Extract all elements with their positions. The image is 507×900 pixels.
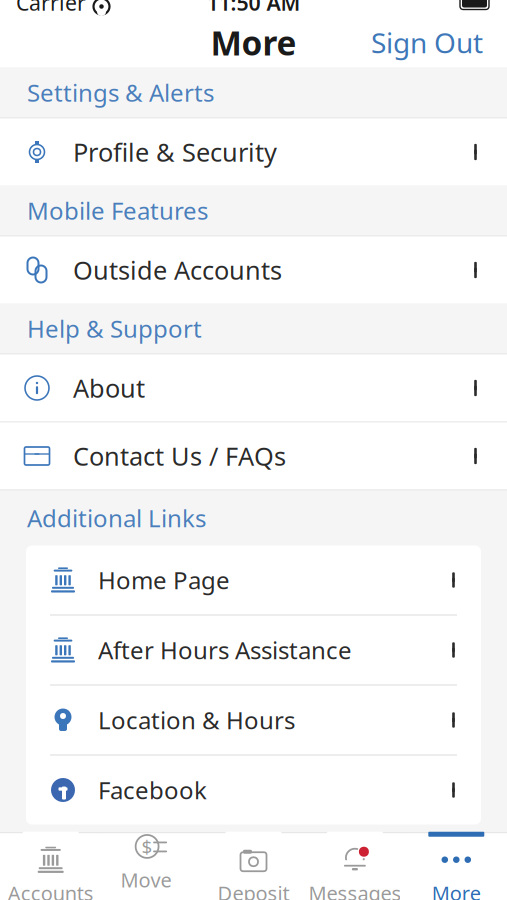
staticText: 11:50 AM: [206, 0, 300, 17]
button[interactable]: After Hours Assistance: [26, 615, 481, 684]
button[interactable]: Accounts: [0, 833, 101, 900]
button[interactable]: Profile & Security: [0, 118, 507, 185]
staticText: Messages: [308, 880, 401, 900]
staticText: $: [142, 834, 153, 859]
staticText: Location & Hours: [98, 704, 295, 736]
button[interactable]: Location & Hours: [26, 685, 481, 754]
staticText: Profile & Security: [73, 135, 277, 169]
button[interactable]: Facebook: [26, 755, 481, 824]
staticText: More: [432, 880, 481, 900]
button[interactable]: Messages: [304, 833, 406, 900]
staticText: Settings & Alerts: [27, 77, 214, 108]
button[interactable]: Outside Accounts: [0, 236, 507, 303]
button[interactable]: Sign Out: [357, 16, 497, 69]
button[interactable]: About: [0, 354, 507, 421]
staticText: Sign Out: [371, 24, 483, 61]
staticText: Mobile Features: [27, 195, 208, 226]
staticText: Carrier: [16, 0, 86, 17]
staticText: Outside Accounts: [73, 253, 282, 287]
staticText: Accounts: [8, 880, 94, 900]
staticText: Contact Us / FAQs: [73, 439, 286, 473]
button[interactable]: Contact Us / FAQs: [0, 422, 507, 489]
staticText: Additional Links: [27, 502, 206, 534]
staticText: More: [210, 20, 296, 65]
staticText: Facebook: [98, 774, 207, 806]
button[interactable]: $: [101, 833, 203, 900]
button[interactable]: Deposit: [203, 833, 304, 900]
button[interactable]: Home Page: [26, 545, 481, 614]
button[interactable]: More: [406, 833, 507, 900]
staticText: After Hours Assistance: [98, 634, 352, 666]
staticText: Help & Support: [27, 313, 202, 344]
staticText: Move Money: [121, 866, 184, 900]
staticText: About: [73, 371, 145, 405]
staticText: Home Page: [98, 564, 230, 596]
staticText: Deposit: [217, 880, 289, 900]
